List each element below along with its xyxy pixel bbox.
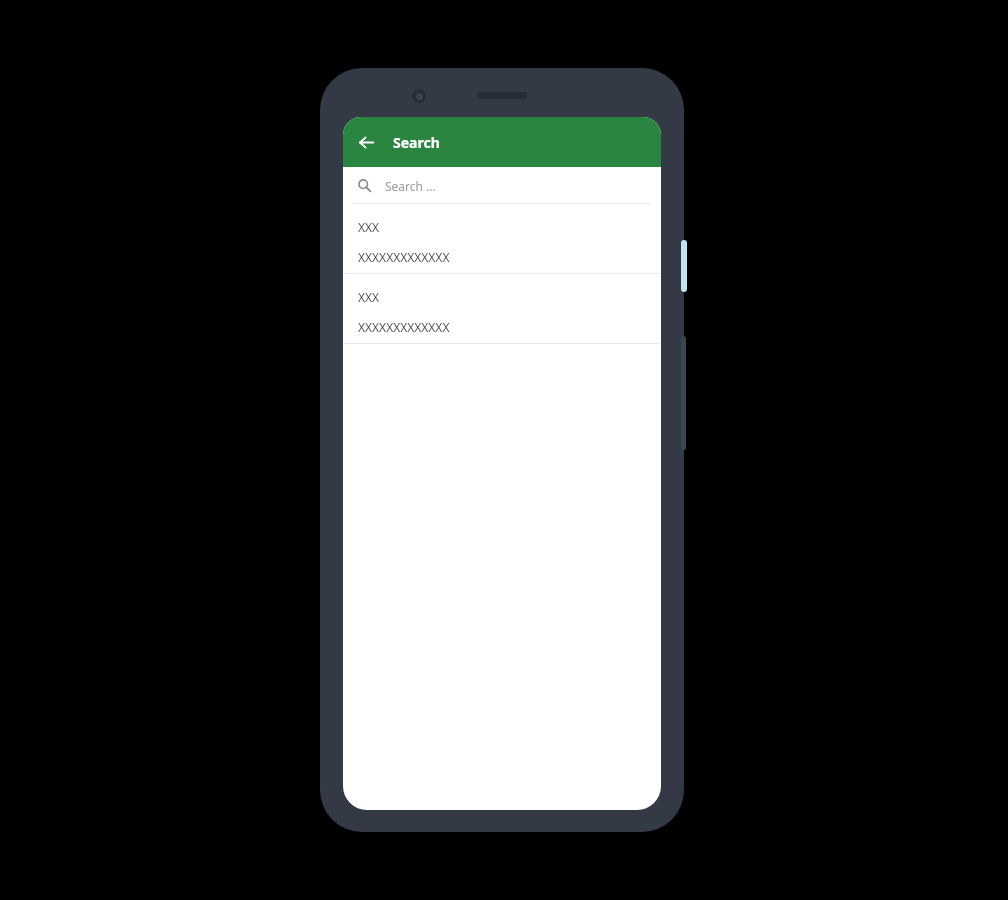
staticText: XXX bbox=[358, 289, 380, 305]
other: Power bbox=[681, 240, 687, 292]
staticText: XXXXXXXXXXXXX bbox=[358, 319, 450, 335]
button[interactable]: XXX bbox=[343, 274, 661, 343]
button[interactable]: Search ... bbox=[343, 167, 661, 204]
button[interactable]: Back bbox=[349, 125, 383, 159]
button[interactable]: XXX bbox=[343, 204, 661, 273]
other: Volume bbox=[681, 336, 686, 450]
staticText: Search ... bbox=[385, 178, 436, 194]
staticText: XXXXXXXXXXXXX bbox=[358, 249, 450, 265]
staticText: XXX bbox=[358, 219, 380, 235]
staticText: Search bbox=[393, 133, 440, 152]
